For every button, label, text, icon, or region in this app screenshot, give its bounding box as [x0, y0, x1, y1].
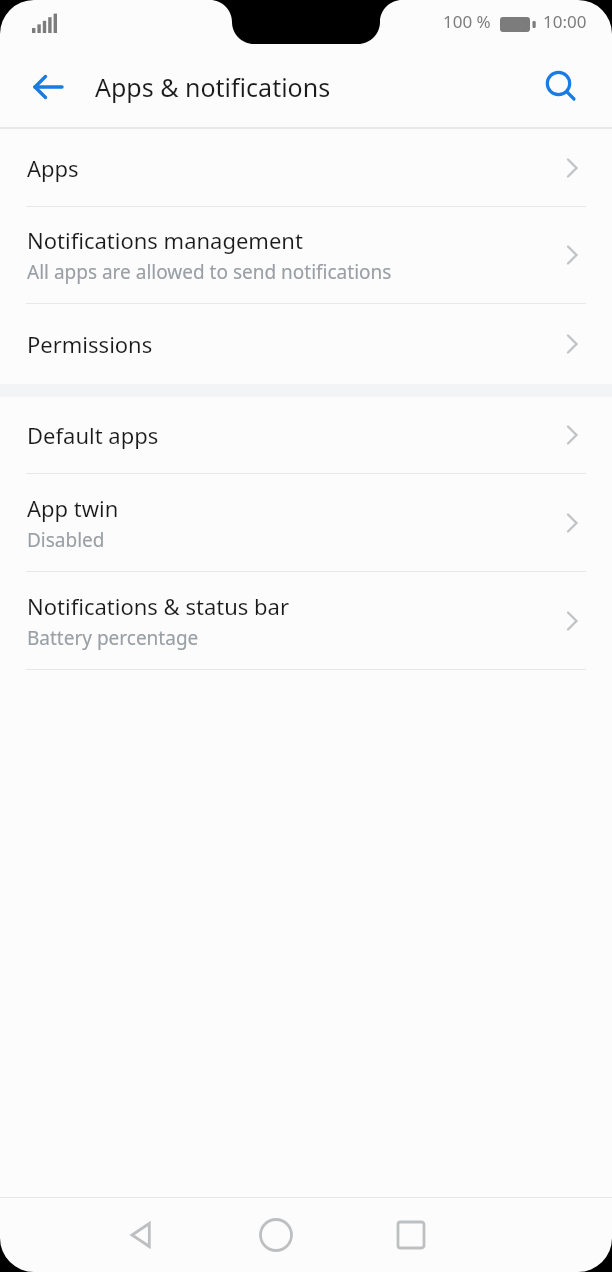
staticText: Battery percentage — [27, 625, 199, 651]
staticText: Apps — [27, 153, 79, 183]
staticText: Default apps — [27, 420, 159, 450]
staticText: 100 % — [443, 10, 491, 33]
staticText: Notifications & status bar — [27, 591, 289, 621]
staticText: Permissions — [27, 329, 153, 359]
button[interactable]: Notifications & status bar — [0, 572, 612, 669]
button[interactable]: Home — [247, 1206, 305, 1264]
button[interactable]: App twin — [0, 474, 612, 571]
button[interactable]: Notifications management — [0, 207, 612, 303]
staticText: Notifications management — [27, 225, 303, 255]
button[interactable]: Recent apps — [382, 1206, 440, 1264]
button[interactable]: Apps — [0, 129, 612, 206]
staticText: 10:00 — [543, 10, 587, 33]
staticText: App twin — [27, 493, 119, 523]
button[interactable]: Permissions — [0, 304, 612, 384]
button[interactable]: Back — [112, 1206, 170, 1264]
button[interactable]: Default apps — [0, 397, 612, 473]
staticText: Apps & notifications — [95, 70, 331, 104]
staticText: Disabled — [27, 527, 105, 553]
staticText: All apps are allowed to send notificatio… — [27, 259, 392, 285]
button[interactable]: Back — [22, 61, 74, 113]
button[interactable]: Search — [535, 61, 587, 113]
